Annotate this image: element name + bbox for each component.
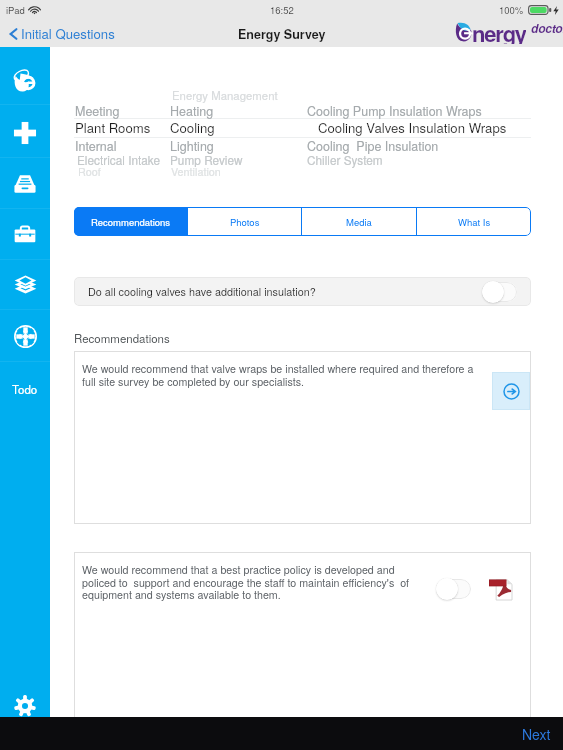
staticText: Plant Rooms [75,118,151,137]
staticText: Chiller System [307,151,383,168]
button[interactable]: Layers [0,259,50,310]
button[interactable]: Home [0,54,50,105]
staticText: We would recommend that valve wraps be i… [82,361,474,389]
staticText: 16:52 [270,3,294,17]
staticText: Heating [170,102,214,120]
staticText: Do all cooling valves have additional in… [88,284,316,299]
staticText: Todo [12,381,38,397]
staticText: Ventilation [171,164,221,179]
staticText: What Is [458,215,491,229]
button[interactable]: Media [302,207,416,236]
button[interactable]: Recommendations [74,207,187,236]
button[interactable]: Support [0,311,50,362]
staticText: Recommendations [91,215,171,229]
staticText: Next [522,724,551,744]
button[interactable]: Settings [0,683,50,729]
staticText: Cooling Pump Insulation Wraps [307,102,482,120]
staticText: Media [346,215,372,229]
staticText: Internal [75,137,117,155]
button[interactable]: Go [492,372,530,410]
button[interactable]: Todo [0,363,50,414]
button[interactable]: Photos [188,207,301,236]
staticText: Energy Survey [238,25,326,43]
button[interactable]: Add [0,107,50,158]
button[interactable]: Initial Questions [0,21,121,46]
staticText: Lighting [170,137,214,155]
staticText: Cooling Valves Insulation Wraps [318,118,507,137]
button[interactable]: Next [510,718,563,750]
staticText: Initial Questions [21,24,115,43]
button[interactable]: Do all cooling valves have additional in… [74,277,531,306]
button[interactable]: Jobs [0,209,50,260]
button[interactable]: Toggle [436,578,471,600]
staticText: Photos [230,215,260,229]
staticText: iPad [6,3,25,17]
staticText: Pump Review [170,151,243,168]
button[interactable]: Inbox [0,158,50,209]
staticText: nergy [472,17,526,44]
staticText: Cooling Pipe Insulation [307,137,439,155]
staticText: 100% [499,3,524,17]
staticText: Meeting [75,102,120,120]
staticText: Recommendations [74,330,170,346]
button[interactable]: Toggle [482,281,517,303]
staticText: Electrical Intake [77,151,161,168]
button[interactable]: PDF [489,579,512,600]
button[interactable]: What Is [417,207,531,236]
staticText: Roof [78,164,101,179]
staticText: We would recommend that a best practice … [82,562,410,602]
staticText: Cooling [170,118,215,137]
staticText: doctor [531,20,563,37]
staticText: Energy Management [172,87,278,103]
